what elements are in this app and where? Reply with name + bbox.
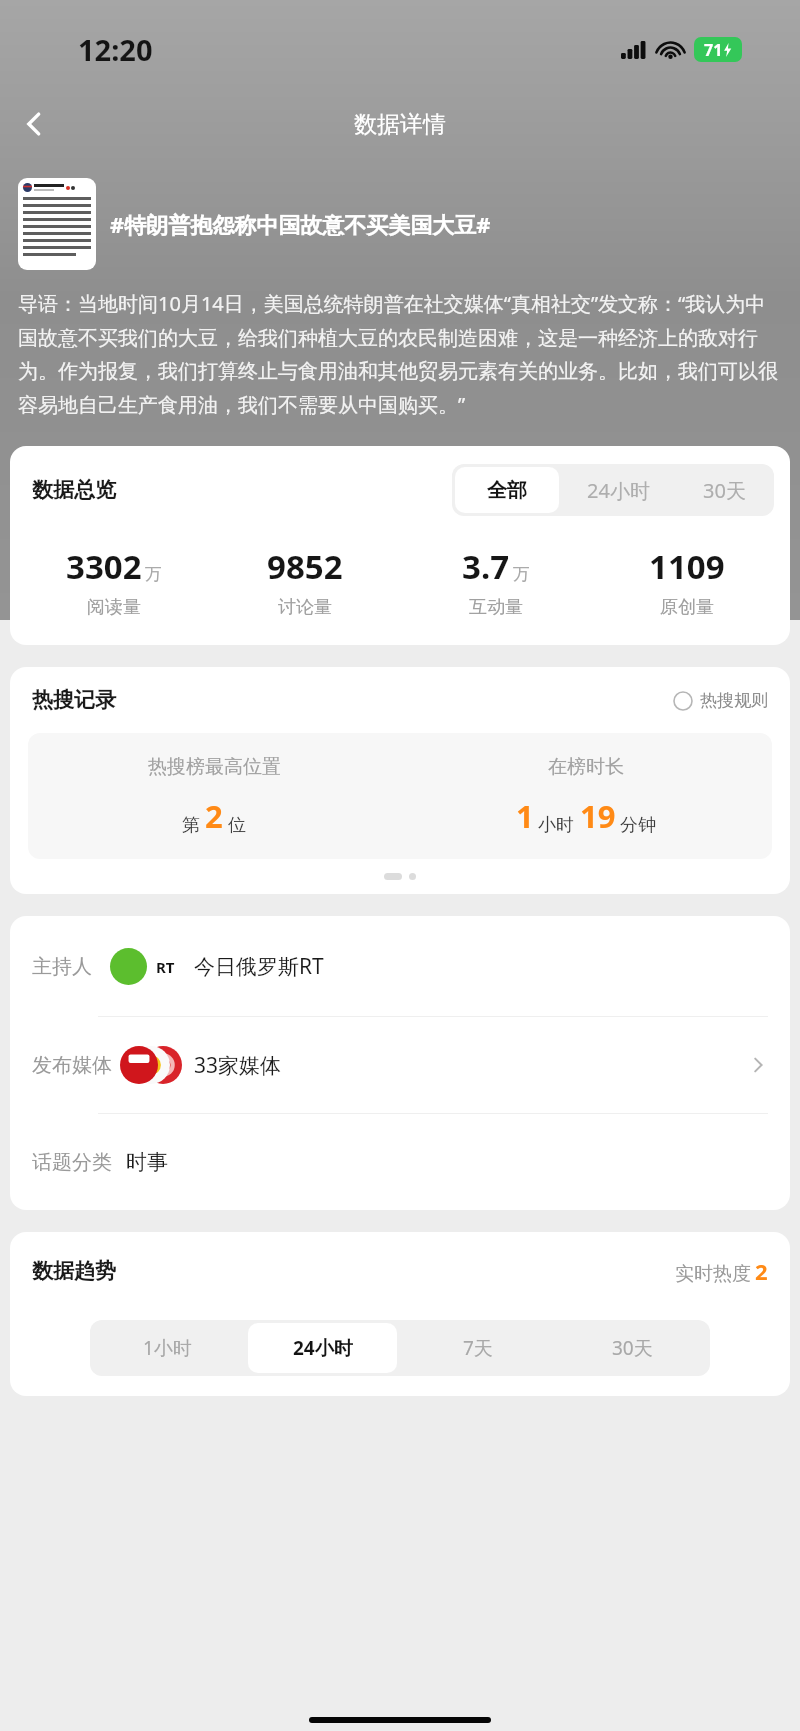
staticText: 3302 — [66, 544, 142, 589]
staticText: 1小时 — [143, 1335, 192, 1361]
staticText: 发布媒体 — [32, 1053, 112, 1078]
staticText: 讨论量 — [278, 596, 332, 619]
button[interactable]: 全部 — [455, 467, 559, 513]
staticText: 2 — [205, 795, 223, 837]
staticText: 71 — [704, 39, 723, 61]
button[interactable]: 24小时 — [562, 464, 674, 516]
staticText: 12:20 — [78, 30, 153, 69]
staticText: 30天 — [703, 477, 746, 504]
staticText: 在榜时长 — [548, 755, 624, 779]
button[interactable]: 热搜规则 — [673, 690, 768, 711]
staticText: 9852 — [267, 544, 343, 589]
staticText: 3.7 — [462, 544, 510, 589]
button[interactable]: 主持人 — [10, 916, 790, 1016]
staticText: 1 — [516, 795, 534, 837]
staticText: 热搜规则 — [700, 690, 768, 711]
staticText: 导语：当地时间10月14日，美国总统特朗普在社交媒体“真相社交”发文称：“我认为… — [18, 290, 782, 418]
button[interactable]: 1109 — [591, 544, 782, 619]
staticText: 热搜记录 — [32, 687, 116, 713]
staticText: 互动量 — [469, 596, 523, 619]
staticText: RT — [156, 957, 175, 977]
staticText: 19 — [580, 795, 616, 837]
staticText: 数据总览 — [32, 477, 116, 503]
staticText: 原创量 — [660, 596, 714, 619]
staticText: 小时 — [538, 814, 574, 837]
staticText: #特朗普抱怨称中国故意不买美国大豆# — [110, 209, 782, 239]
button[interactable]: Back — [6, 96, 62, 152]
staticText: 主持人 — [32, 954, 92, 979]
staticText: 24小时 — [293, 1335, 353, 1361]
staticText: 分钟 — [620, 814, 656, 837]
button[interactable]: 24小时 — [248, 1323, 397, 1373]
button[interactable]: 1小时 — [93, 1323, 242, 1373]
staticText: 时事 — [126, 1149, 168, 1175]
staticText: 阅读量 — [87, 596, 141, 619]
staticText: 7天 — [463, 1335, 493, 1361]
staticText: 万 — [513, 564, 530, 585]
staticText: 热搜榜最高位置 — [148, 755, 281, 779]
staticText: 话题分类 — [32, 1150, 112, 1175]
staticText: 数据详情 — [354, 110, 446, 139]
staticText: 万 — [145, 564, 162, 585]
staticText: 实时热度 — [675, 1262, 751, 1286]
staticText: 30天 — [612, 1335, 653, 1361]
staticText: 24小时 — [587, 477, 650, 504]
staticText: 第 — [182, 814, 200, 837]
button[interactable]: 7天 — [403, 1323, 552, 1373]
button[interactable]: 9852 — [209, 544, 400, 619]
staticText: 数据趋势 — [32, 1258, 116, 1284]
button[interactable]: 30天 — [674, 464, 774, 516]
staticText: 位 — [228, 814, 246, 837]
staticText: 全部 — [487, 478, 527, 503]
button[interactable] — [18, 178, 96, 270]
button[interactable]: 30天 — [558, 1323, 707, 1373]
button[interactable]: 发布媒体 — [10, 1017, 790, 1113]
button[interactable]: 3.7 — [400, 544, 591, 619]
button[interactable]: 3302 — [18, 544, 209, 619]
staticText: 33家媒体 — [194, 1051, 282, 1080]
staticText: 2 — [755, 1256, 768, 1286]
staticText: 今日俄罗斯RT — [194, 952, 324, 981]
staticText: 1109 — [649, 544, 725, 589]
